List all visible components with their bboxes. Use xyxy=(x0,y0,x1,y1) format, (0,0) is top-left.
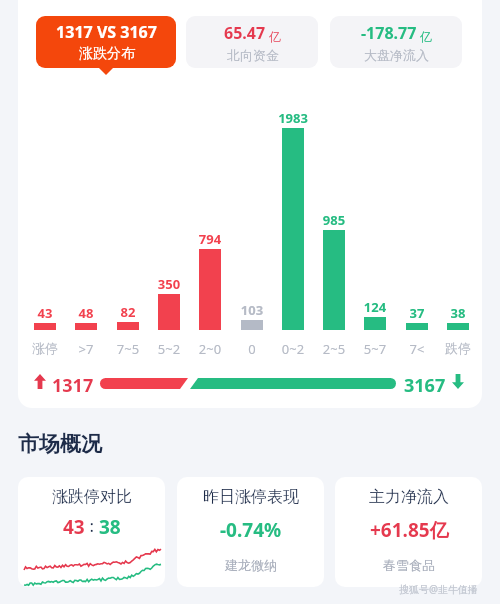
staticText: 搜狐号@韭牛值播 xyxy=(399,582,478,596)
button[interactable]: 65.47 xyxy=(186,16,318,68)
staticText: 2~0 xyxy=(185,340,235,358)
staticText: 82 xyxy=(108,303,148,321)
staticText: 350 xyxy=(149,275,189,293)
staticText: 38 xyxy=(99,514,121,540)
staticText: 5~2 xyxy=(144,340,194,358)
staticText: 主力净流入 xyxy=(369,487,449,507)
staticText: 3167 xyxy=(404,373,446,398)
staticText: 昨日涨停表现 xyxy=(203,487,299,507)
other: Advancing xyxy=(34,374,46,389)
staticText: 37 xyxy=(397,304,437,322)
staticText: 43 xyxy=(25,304,65,322)
staticText: 65.47 xyxy=(224,22,266,44)
button[interactable]: 1317 VS 3167 xyxy=(36,16,176,68)
staticText: 大盘净流入 xyxy=(364,47,429,63)
staticText: 985 xyxy=(314,211,354,229)
staticText: 7~5 xyxy=(103,340,153,358)
staticText: 市场概况 xyxy=(18,431,102,457)
staticText: 0~2 xyxy=(268,340,318,358)
staticText: 1317 xyxy=(52,373,94,398)
staticText: 跌停 xyxy=(433,340,483,356)
staticText: 亿 xyxy=(420,29,432,44)
staticText: : xyxy=(85,514,99,537)
staticText: +61.85亿 xyxy=(370,517,449,543)
button[interactable]: 涨跌停对比 xyxy=(18,477,165,587)
button[interactable]: 主力净流入 xyxy=(335,477,482,587)
button[interactable]: -178.77 xyxy=(330,16,462,68)
staticText: 1317 VS 3167 xyxy=(56,21,157,43)
staticText: 43 xyxy=(63,514,85,540)
staticText: 1983 xyxy=(273,109,313,127)
staticText: 103 xyxy=(232,301,272,319)
staticText: 亿 xyxy=(269,29,281,44)
staticText: -0.74% xyxy=(220,517,282,543)
staticText: 2~5 xyxy=(309,340,359,358)
staticText: 7< xyxy=(392,340,442,358)
button[interactable]: 昨日涨停表现 xyxy=(177,477,324,587)
staticText: 建龙微纳 xyxy=(225,557,277,573)
staticText: 0 xyxy=(227,340,277,358)
staticText: 38 xyxy=(438,304,478,322)
staticText: 涨跌停对比 xyxy=(52,487,132,507)
staticText: 涨停 xyxy=(20,340,70,356)
staticText: 124 xyxy=(355,298,395,316)
staticText: 794 xyxy=(190,230,230,248)
staticText: -178.77 xyxy=(361,22,417,44)
staticText: 春雪食品 xyxy=(383,557,435,573)
other: Declining xyxy=(452,374,464,389)
staticText: 48 xyxy=(66,304,106,322)
staticText: 北向资金 xyxy=(227,47,279,63)
staticText: 涨跌分布 xyxy=(79,45,135,63)
staticText: >7 xyxy=(61,340,111,358)
staticText: 5~7 xyxy=(350,340,400,358)
